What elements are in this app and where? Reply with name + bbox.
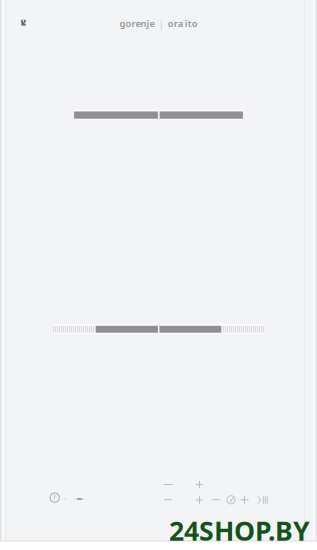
- staticText: |: [158, 16, 164, 30]
- button[interactable]: Brand mark: [0, 0, 317, 550]
- staticText: gorenje: [120, 17, 155, 30]
- staticText: ora ïto: [168, 17, 198, 30]
- staticText: 24SHOP.BY: [169, 513, 310, 548]
